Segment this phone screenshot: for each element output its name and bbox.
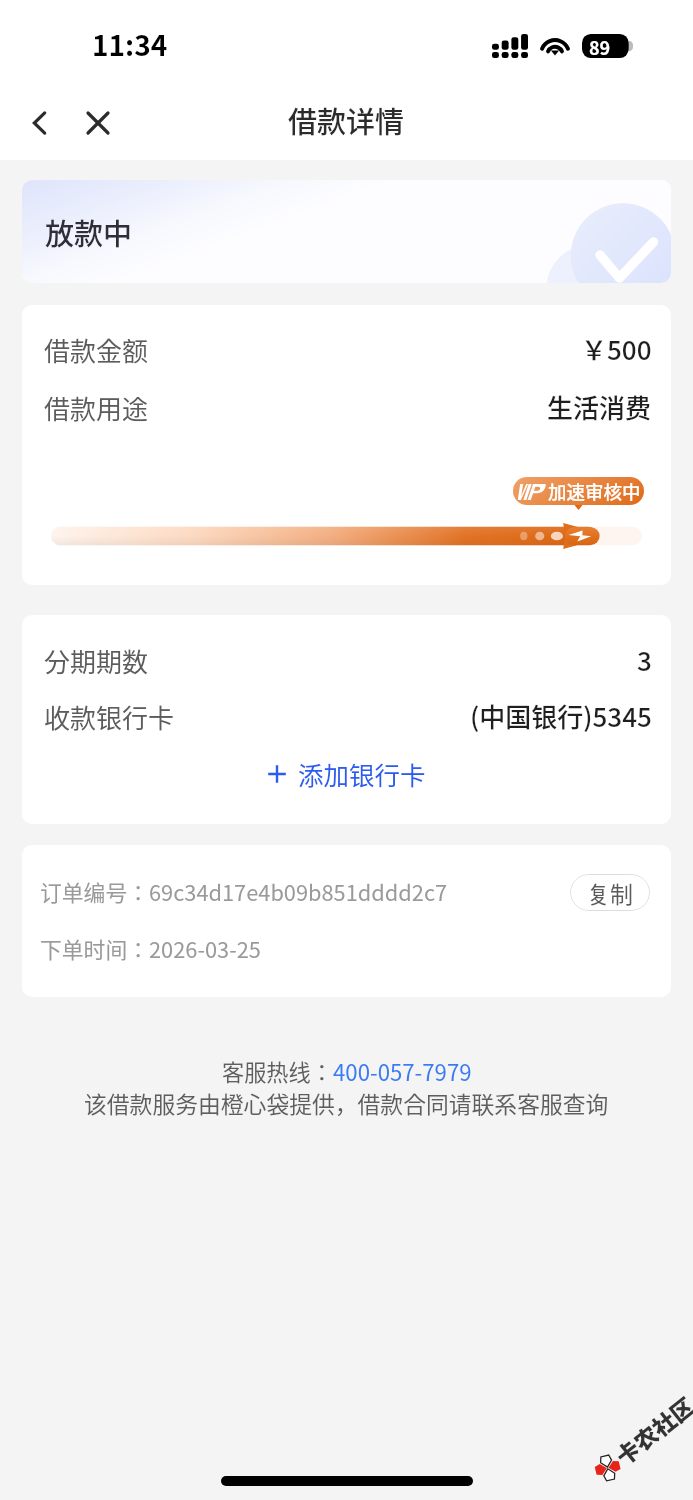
staticText: 添加银行卡 xyxy=(298,755,426,792)
button[interactable]: 400-057-7979 xyxy=(333,1055,472,1087)
staticText: 借款用途 xyxy=(44,389,149,427)
staticText: 下单时间： xyxy=(40,933,149,965)
button[interactable]: 加速审核中 xyxy=(513,477,644,505)
staticText: 卡农社区 xyxy=(608,1388,693,1471)
button[interactable]: 复制 xyxy=(570,874,650,911)
staticText: 69c34d17e4b09b851dddd2c7 xyxy=(149,876,448,908)
staticText: 分期期数 xyxy=(44,642,149,680)
staticText: 客服热线： xyxy=(222,1055,333,1087)
staticText: ￥500 xyxy=(581,330,652,368)
staticText: 2026-03-25 xyxy=(149,933,261,965)
staticText: 加速审核中 xyxy=(548,478,641,505)
staticText: 3 xyxy=(637,641,652,679)
staticText: (中国银行)5345 xyxy=(470,697,652,735)
button[interactable]: 放款中 xyxy=(22,180,671,283)
staticText: 复制 xyxy=(587,876,633,909)
staticText: 89 xyxy=(589,34,611,58)
staticText: 订单编号： xyxy=(40,876,149,908)
staticText: 收款银行卡 xyxy=(44,698,175,736)
staticText: 11:34 xyxy=(92,24,168,65)
staticText: 该借款服务由橙心袋提供，借款合同请联系客服查询 xyxy=(84,1087,609,1120)
button[interactable]: 添加银行卡 xyxy=(259,752,434,795)
staticText: 400-057-7979 xyxy=(333,1055,472,1087)
button[interactable]: Back xyxy=(11,94,68,151)
staticText: 生活消费 xyxy=(547,388,652,426)
staticText: 借款详情 xyxy=(288,99,405,141)
staticText: 放款中 xyxy=(45,211,133,253)
button[interactable]: Close xyxy=(69,94,126,151)
staticText: 借款金额 xyxy=(44,331,149,369)
